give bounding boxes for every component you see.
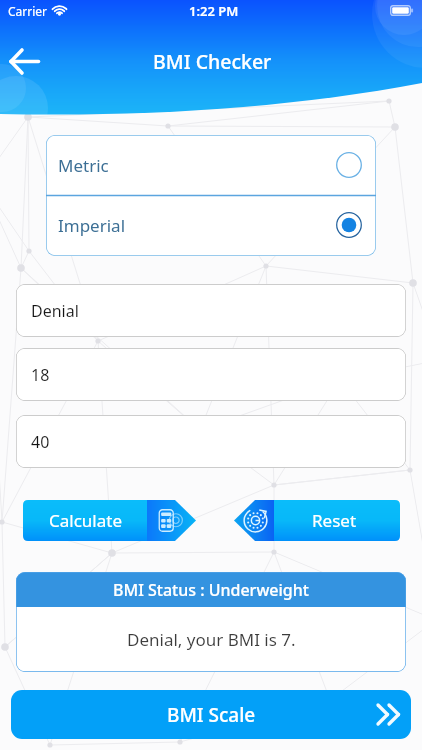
staticText: BMI Scale xyxy=(167,702,256,728)
button[interactable]: Reset xyxy=(234,500,400,541)
staticText: Denial xyxy=(31,300,79,322)
button[interactable]: 40 xyxy=(16,415,406,468)
button[interactable]: Denial xyxy=(16,284,406,337)
staticText: Denial, your BMI is 7. xyxy=(127,628,296,651)
button[interactable]: Back xyxy=(3,40,45,82)
staticText: 40 xyxy=(31,431,50,453)
button[interactable]: Metric xyxy=(46,135,376,195)
staticText: Metric xyxy=(58,154,109,177)
button[interactable]: BMI Status : Underweight xyxy=(16,572,406,672)
staticText: Imperial xyxy=(58,214,126,237)
staticText: Carrier xyxy=(8,3,48,19)
staticText: 1:22 PM xyxy=(189,2,239,20)
staticText: Calculate xyxy=(49,509,122,532)
staticText: BMI Checker xyxy=(153,48,272,75)
staticText: BMI Status : Underweight xyxy=(113,579,309,601)
staticText: 18 xyxy=(31,364,50,386)
button[interactable]: BMI Scale xyxy=(11,690,411,739)
button[interactable]: 18 xyxy=(16,348,406,401)
button[interactable]: Calculate xyxy=(23,500,196,541)
staticText: Reset xyxy=(312,509,357,532)
button[interactable]: Imperial xyxy=(46,195,376,255)
